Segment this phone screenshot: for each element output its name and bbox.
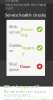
staticText: What happened? [4, 84, 39, 89]
staticText: production cluster at 04:12 UTC. Checks … [5, 0, 51, 2]
staticText: Database [9, 43, 22, 53]
button[interactable]: Database [6, 39, 45, 57]
staticText: Down [19, 64, 31, 69]
button[interactable]: Mail queue [6, 57, 45, 76]
staticText: listed below with their latest result. [5, 3, 46, 10]
staticText: Service health checks [5, 12, 46, 18]
staticText: configuration push. A rollback is in pro… [4, 98, 53, 100]
staticText: Running [21, 21, 34, 37]
staticText: Healthy [22, 40, 36, 56]
staticText: Mail queue [9, 61, 19, 72]
staticText: The mail worker pool stopped responding … [4, 90, 46, 97]
button[interactable]: Web server [6, 20, 45, 39]
staticText: Web server [9, 24, 21, 35]
